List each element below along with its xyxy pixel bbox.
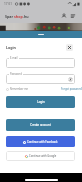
button[interactable]: Show password <box>68 77 73 82</box>
button[interactable]: Account <box>61 13 67 19</box>
button[interactable]: Continue with Facebook <box>6 136 75 147</box>
button[interactable]: Create account <box>6 119 75 131</box>
staticText: Login <box>6 45 16 50</box>
button[interactable]: Login <box>6 96 75 108</box>
staticText: Spar <box>5 14 14 19</box>
button[interactable]: Remember me <box>6 87 29 91</box>
staticText: Continue with Google <box>29 154 57 158</box>
staticText: Login <box>37 100 45 104</box>
staticText: Create account <box>30 123 51 127</box>
button[interactable]: Menu <box>70 13 76 19</box>
staticText: .hu <box>23 14 29 19</box>
staticText: shop <box>14 14 23 19</box>
staticText: E-mail <box>10 56 18 60</box>
staticText: 17:51 <box>4 2 13 6</box>
button[interactable] <box>6 58 75 68</box>
button[interactable]: Close <box>66 44 73 51</box>
button[interactable]: Forgot password? <box>61 87 82 91</box>
staticText: Remember me <box>10 87 29 91</box>
button[interactable] <box>6 74 75 84</box>
staticText: Continue with Facebook <box>27 140 58 144</box>
button[interactable]: Continue with Google <box>6 151 75 161</box>
staticText: Password <box>10 72 22 76</box>
